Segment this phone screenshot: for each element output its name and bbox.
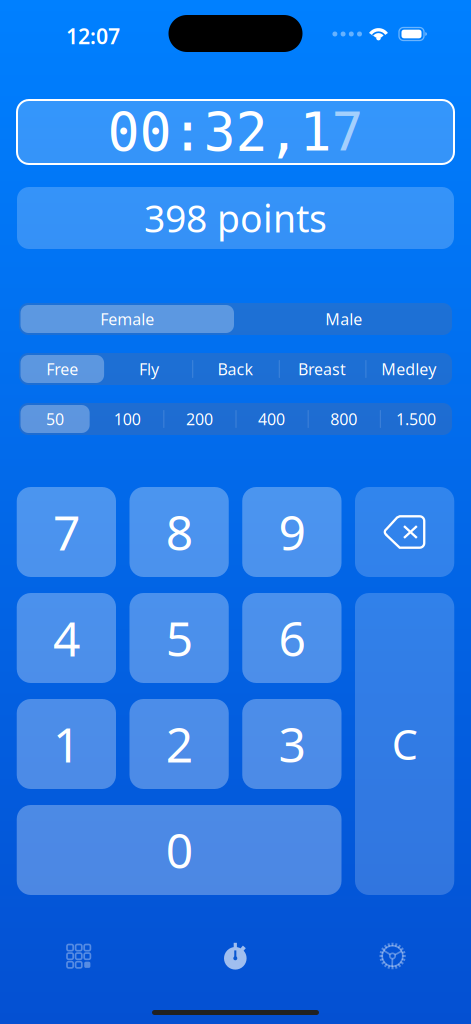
button[interactable]: Keypad xyxy=(0,933,157,979)
button[interactable]: Settings xyxy=(314,933,471,979)
button[interactable]: 1 xyxy=(17,699,116,789)
button[interactable]: Breast xyxy=(279,353,365,385)
staticText: 2 xyxy=(166,712,193,776)
button[interactable]: 398 points xyxy=(17,187,454,249)
staticText: 1.500 xyxy=(396,408,436,430)
button[interactable]: Female xyxy=(19,303,235,335)
button[interactable]: C xyxy=(355,593,454,895)
staticText: Medley xyxy=(381,358,436,380)
staticText: 800 xyxy=(330,408,357,430)
button[interactable]: Free xyxy=(19,353,106,385)
staticText: 9 xyxy=(278,500,305,564)
staticText: C xyxy=(392,717,418,771)
staticText: 3 xyxy=(278,712,305,776)
button[interactable]: 0 xyxy=(17,805,342,895)
staticText: Male xyxy=(325,308,362,330)
button[interactable]: 2 xyxy=(129,699,229,789)
button[interactable]: 1.500 xyxy=(380,403,452,435)
staticText: 1 xyxy=(53,712,80,776)
button[interactable]: Medley xyxy=(365,353,452,385)
staticText: 8 xyxy=(166,500,193,564)
button[interactable]: Fly xyxy=(106,353,192,385)
staticText: 12:07 xyxy=(66,22,120,50)
staticText: 100 xyxy=(114,408,141,430)
button[interactable]: 8 xyxy=(129,487,229,577)
staticText: Breast xyxy=(298,358,346,380)
staticText: 00:32,1 xyxy=(107,102,331,162)
button[interactable]: 200 xyxy=(163,403,235,435)
staticText: Back xyxy=(217,358,253,380)
button[interactable]: 5 xyxy=(129,593,229,683)
staticText: 4 xyxy=(53,606,80,670)
staticText: 398 points xyxy=(144,193,327,243)
button[interactable]: Male xyxy=(235,303,452,335)
staticText: 400 xyxy=(258,408,285,430)
button[interactable]: Stopwatch xyxy=(157,933,314,979)
button[interactable]: 800 xyxy=(308,403,380,435)
staticText: Female xyxy=(100,308,154,330)
button[interactable]: 400 xyxy=(235,403,308,435)
staticText: 6 xyxy=(278,606,305,670)
button[interactable]: Delete xyxy=(355,487,454,577)
button[interactable]: 7 xyxy=(17,487,116,577)
staticText: 5 xyxy=(166,606,193,670)
button[interactable]: 9 xyxy=(242,487,341,577)
button[interactable]: 4 xyxy=(17,593,116,683)
staticText: Fly xyxy=(139,358,159,380)
staticText: 0 xyxy=(166,818,193,882)
button[interactable]: 6 xyxy=(242,593,341,683)
staticText: 50 xyxy=(46,408,64,430)
button[interactable]: Back xyxy=(192,353,279,385)
button[interactable]: 50 xyxy=(19,403,91,435)
staticText: 7 xyxy=(331,102,363,162)
staticText: 7 xyxy=(53,500,80,564)
button[interactable]: 100 xyxy=(91,403,163,435)
staticText: Free xyxy=(46,358,78,380)
staticText: 200 xyxy=(186,408,213,430)
button[interactable]: 3 xyxy=(242,699,341,789)
